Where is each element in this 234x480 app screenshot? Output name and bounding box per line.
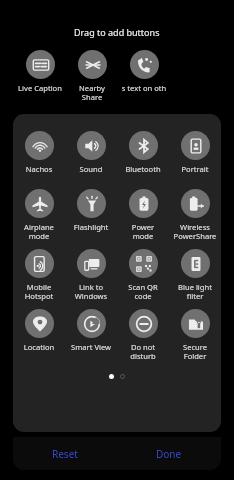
staticText: Nachos [13,164,65,174]
staticText: Bluetooth [117,164,169,174]
staticText: Smart View [65,342,117,352]
button[interactable]: Power mode [117,189,169,242]
button[interactable]: Airplane mode [13,189,65,242]
staticText: Drag to add buttons [74,26,160,38]
staticText: Sound [65,164,117,174]
button[interactable]: Blue light filter [169,249,221,302]
staticText: Scan QR code [117,282,169,302]
button[interactable]: Smart View [65,309,117,352]
staticText: Location [13,342,65,352]
staticText: Portrait [169,164,221,174]
button[interactable]: Wireless PowerShare [169,189,221,242]
button[interactable]: Bluetooth [117,131,169,174]
button[interactable]: Do not disturb [117,309,169,362]
button[interactable]: Reset [13,437,117,470]
button[interactable]: Done [117,437,221,470]
button[interactable]: Nearby Share [66,50,118,103]
staticText: Wireless PowerShare [169,222,221,242]
button[interactable]: Portrait [169,131,221,174]
button[interactable]: Sound [65,131,117,174]
staticText: Flashlight [65,222,117,232]
button[interactable]: Flashlight [65,189,117,232]
staticText: Airplane mode [13,222,65,242]
button[interactable]: Nachos [13,131,65,174]
staticText: Do not disturb [117,342,169,362]
staticText: Secure Folder [169,342,221,362]
staticText: s text on oth [118,83,170,93]
staticText: Nearby Share [66,83,118,103]
button[interactable]: Link to Windows [65,249,117,302]
staticText: Mobile Hotspot [13,282,65,302]
button[interactable]: Location [13,309,65,352]
staticText: Done [156,447,182,461]
button[interactable]: Live Caption [14,50,66,93]
button[interactable]: s text on oth [118,50,170,93]
staticText: Link to Windows [65,282,117,302]
button[interactable]: Scan QR code [117,249,169,302]
staticText: Live Caption [14,83,66,93]
button[interactable]: Secure Folder [169,309,221,362]
staticText: Power mode [117,222,169,242]
staticText: Blue light filter [169,282,221,302]
button[interactable]: Mobile Hotspot [13,249,65,302]
staticText: Reset [52,447,78,461]
